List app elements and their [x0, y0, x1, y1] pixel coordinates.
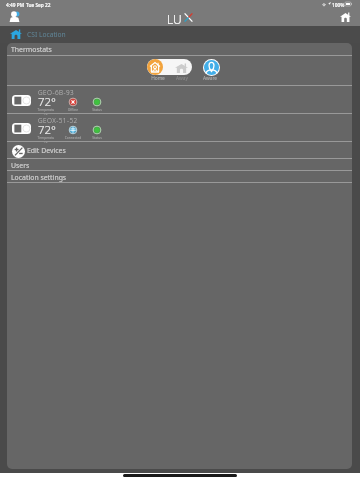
- staticText: GEOX-51-52: [38, 116, 78, 125]
- staticText: 72°: [38, 122, 56, 138]
- button[interactable]: Users: [7, 159, 352, 171]
- staticText: Temperature: [37, 135, 55, 143]
- staticText: 100%: [332, 2, 345, 9]
- button[interactable]: CSI Location: [0, 26, 360, 43]
- staticText: LU: [167, 11, 182, 27]
- staticText: CSI Location: [27, 30, 66, 39]
- staticText: 72°: [38, 94, 56, 110]
- staticText: Home: [148, 75, 168, 82]
- button[interactable]: GEO-6B-93: [7, 86, 352, 114]
- button[interactable]: Account: [9, 11, 20, 22]
- button[interactable]: GEOX-51-52: [7, 114, 352, 142]
- staticText: 4:49 PM: [6, 2, 25, 9]
- staticText: Edit Devices: [27, 146, 66, 155]
- staticText: Tue Sep 22: [26, 2, 51, 9]
- staticText: Temperature: [37, 107, 55, 115]
- staticText: Users: [11, 161, 30, 170]
- button[interactable]: Home: [340, 12, 351, 22]
- staticText: Connected: [64, 135, 82, 139]
- staticText: Location settings: [11, 173, 67, 182]
- staticText: Aware: [200, 75, 220, 82]
- staticText: Status: [88, 135, 106, 139]
- staticText: Thermostats: [11, 45, 52, 54]
- button[interactable]: Edit Devices: [7, 142, 352, 159]
- button[interactable]: [147, 59, 192, 75]
- button[interactable]: Location settings: [7, 171, 352, 183]
- staticText: Offline: [64, 107, 82, 111]
- button[interactable]: [204, 60, 219, 75]
- staticText: Away: [172, 75, 192, 82]
- staticText: GEO-6B-93: [38, 88, 75, 97]
- staticText: Status: [88, 107, 106, 111]
